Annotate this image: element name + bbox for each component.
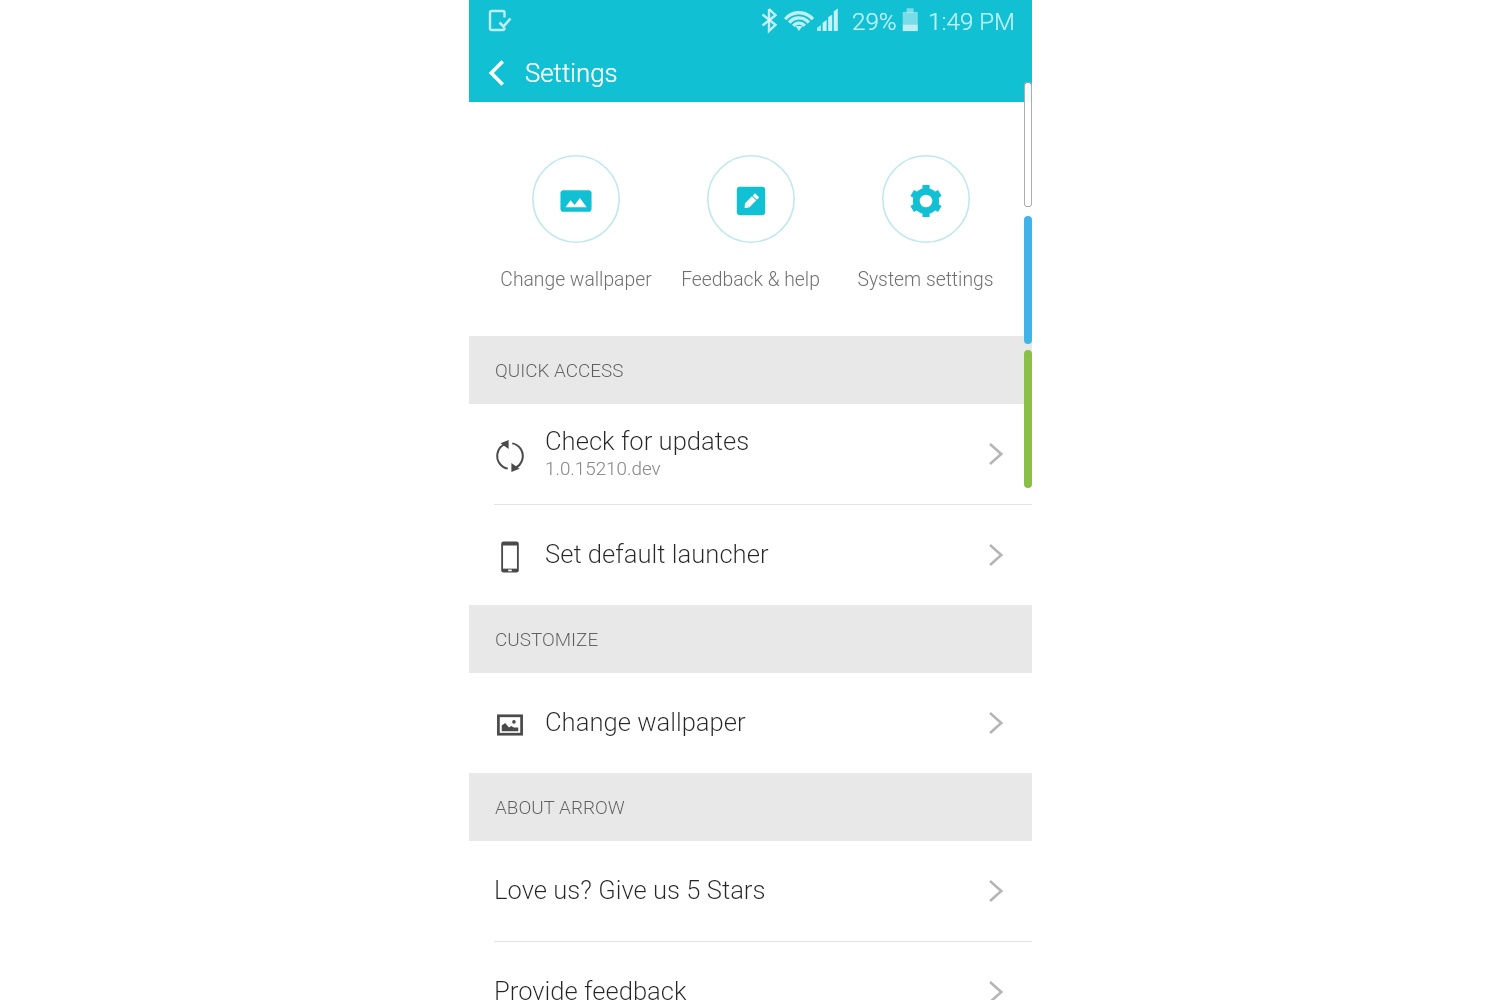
staticText: Change wallpaper bbox=[500, 268, 652, 291]
button[interactable]: Back bbox=[469, 45, 525, 101]
staticText: ABOUT ARROW bbox=[495, 796, 625, 818]
button[interactable]: White tab bbox=[1024, 82, 1032, 207]
button[interactable]: Check for updates bbox=[469, 404, 1032, 504]
staticText: Set default launcher bbox=[545, 539, 769, 569]
staticText: Change wallpaper bbox=[545, 707, 746, 737]
button[interactable]: Feedback & help bbox=[663, 102, 838, 291]
staticText: Feedback & help bbox=[681, 268, 820, 291]
button[interactable]: Blue tab bbox=[1024, 216, 1032, 344]
staticText: QUICK ACCESS bbox=[495, 359, 624, 381]
staticText: Love us? Give us 5 Stars bbox=[494, 875, 766, 905]
staticText: Provide feedback bbox=[494, 976, 687, 1000]
staticText: Check for updates bbox=[545, 426, 750, 456]
staticText: System settings bbox=[857, 268, 994, 291]
button[interactable]: Set default launcher bbox=[469, 505, 1032, 605]
staticText: 29% bbox=[852, 8, 897, 36]
button[interactable]: Love us? Give us 5 Stars bbox=[469, 841, 1032, 941]
button[interactable]: Change wallpaper bbox=[469, 673, 1032, 773]
button[interactable]: Green tab bbox=[1024, 350, 1032, 488]
staticText: CUSTOMIZE bbox=[495, 628, 599, 650]
button[interactable]: Change wallpaper bbox=[488, 102, 663, 291]
button[interactable]: Provide feedback bbox=[469, 942, 1032, 1000]
staticText: 1:49 PM bbox=[928, 8, 1016, 36]
staticText: Settings bbox=[525, 58, 618, 88]
button[interactable]: System settings bbox=[838, 102, 1013, 291]
staticText: 1.0.15210.dev bbox=[545, 458, 661, 480]
